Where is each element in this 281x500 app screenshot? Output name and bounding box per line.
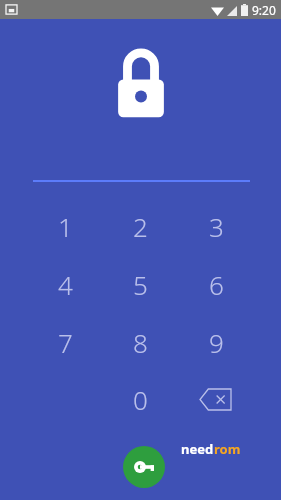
button[interactable]: 4: [38, 262, 92, 306]
staticText: 4: [58, 267, 73, 302]
staticText: need: [181, 440, 214, 458]
staticText: 8: [133, 325, 148, 360]
staticText: 9:20: [252, 2, 276, 18]
button[interactable]: 0: [113, 377, 167, 421]
staticText: 0: [133, 382, 148, 417]
staticText: 6: [209, 267, 224, 302]
button[interactable]: 8: [113, 320, 167, 364]
staticText: 7: [58, 325, 73, 360]
staticText: 3: [209, 209, 224, 244]
button[interactable]: 3: [189, 204, 243, 248]
staticText: rom: [214, 440, 241, 458]
button[interactable]: Backspace: [189, 377, 243, 421]
button[interactable]: 7: [38, 320, 92, 364]
button[interactable]: 6: [189, 262, 243, 306]
staticText: 2: [133, 209, 148, 244]
staticText: 1: [58, 209, 73, 244]
button[interactable]: 2: [113, 204, 167, 248]
staticText: 5: [133, 267, 148, 302]
staticText: 9: [209, 325, 224, 360]
button[interactable]: 5: [113, 262, 167, 306]
button[interactable]: 9: [189, 320, 243, 364]
button[interactable]: 1: [38, 204, 92, 248]
button[interactable]: Unlock: [123, 446, 165, 488]
